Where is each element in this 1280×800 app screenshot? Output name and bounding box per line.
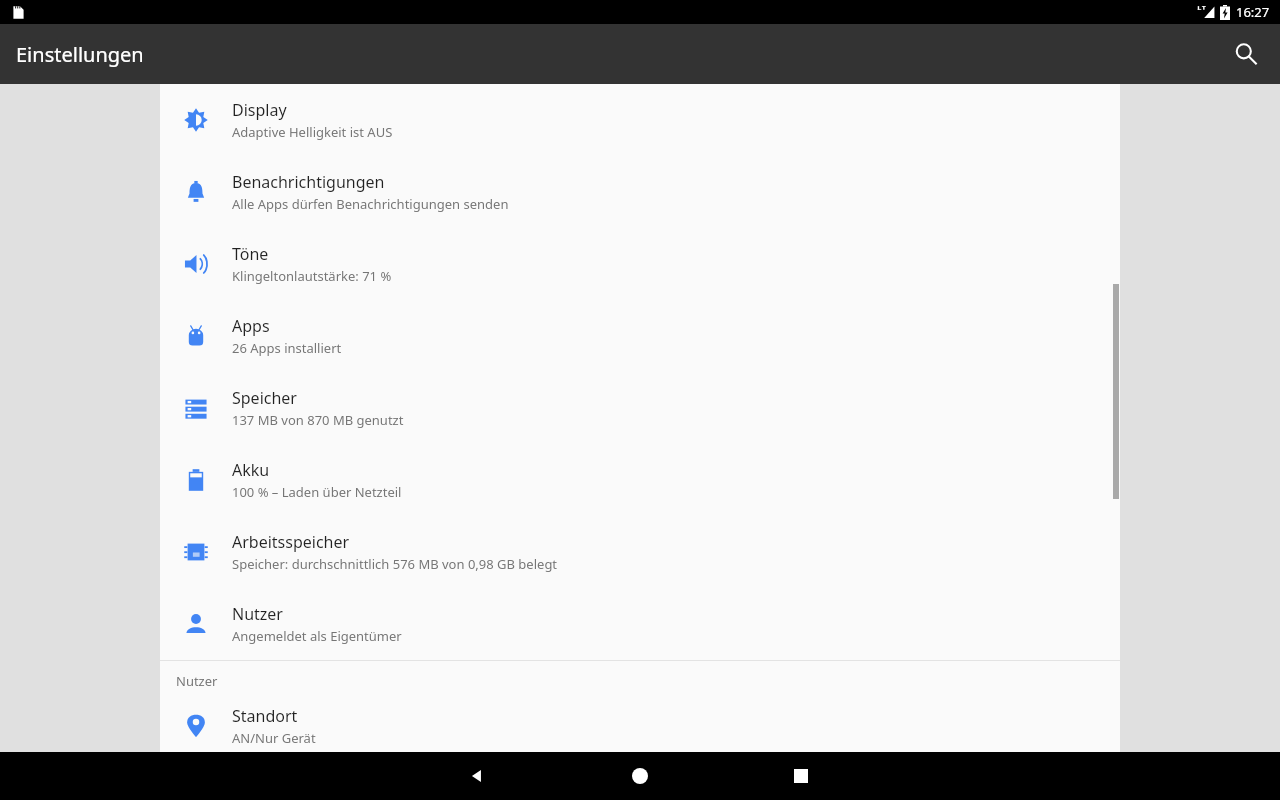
button[interactable]: Apps xyxy=(160,300,1120,372)
staticText: Benachrichtigungen xyxy=(232,171,385,193)
button[interactable]: Display xyxy=(160,84,1120,156)
staticText: 16:27 xyxy=(1236,3,1270,21)
staticText: Display xyxy=(232,99,287,121)
staticText: 137 MB von 870 MB genutzt xyxy=(232,411,404,429)
button[interactable]: Speicher xyxy=(160,372,1120,444)
staticText: Arbeitsspeicher xyxy=(232,531,350,553)
staticText: 26 Apps installiert xyxy=(232,339,342,357)
button[interactable]: Töne xyxy=(160,228,1120,300)
button[interactable]: Übersicht xyxy=(777,752,825,800)
staticText: Nutzer xyxy=(232,603,283,625)
staticText: Akku xyxy=(232,459,270,481)
button[interactable]: Akku xyxy=(160,444,1120,516)
staticText: Töne xyxy=(232,243,269,265)
staticText: Speicher: durchschnittlich 576 MB von 0,… xyxy=(232,555,558,573)
staticText: Standort xyxy=(232,705,298,727)
staticText: Angemeldet als Eigentümer xyxy=(232,627,402,645)
button[interactable]: Suchen xyxy=(1222,30,1270,78)
button[interactable]: Standort xyxy=(160,700,1120,752)
staticText: Apps xyxy=(232,315,270,337)
button[interactable]: Startbildschirm xyxy=(616,752,664,800)
button[interactable]: Zurück xyxy=(453,752,501,800)
staticText: Alle Apps dürfen Benachrichtigungen send… xyxy=(232,195,509,213)
button[interactable]: Benachrichtigungen xyxy=(160,156,1120,228)
staticText: 100 % – Laden über Netzteil xyxy=(232,483,402,501)
staticText: Klingeltonlautstärke: 71 % xyxy=(232,267,392,285)
staticText: Speicher xyxy=(232,387,297,409)
staticText: Adaptive Helligkeit ist AUS xyxy=(232,123,393,141)
staticText: Nutzer xyxy=(176,672,218,690)
button[interactable]: Arbeitsspeicher xyxy=(160,516,1120,588)
staticText: Einstellungen xyxy=(16,41,144,68)
staticText: AN/Nur Gerät xyxy=(232,729,316,747)
button[interactable]: Nutzer xyxy=(160,588,1120,660)
